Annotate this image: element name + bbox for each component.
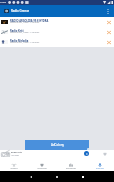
staticText: Stations bbox=[10, 167, 18, 170]
staticText: Greek Music, News - 128 kbps bbox=[10, 41, 40, 44]
button[interactable]: Play bbox=[84, 151, 89, 156]
staticText: Radio Kriti bbox=[10, 29, 24, 33]
button[interactable]: Radio Kriti bbox=[0, 150, 114, 157]
staticText: Greek Music, News - 128 kbps bbox=[10, 31, 40, 34]
button[interactable]: Recordings bbox=[56, 157, 85, 171]
staticText: Favourites bbox=[37, 167, 47, 170]
staticText: RADIO ARGOLIDA 99.8 HYDRA bbox=[10, 19, 49, 23]
staticText: Podcasts bbox=[96, 167, 104, 170]
staticText: Radio Kriti bbox=[11, 151, 22, 154]
button[interactable]: Favourites bbox=[28, 157, 56, 171]
button[interactable]: Home bbox=[44, 171, 70, 182]
button[interactable]: More options bbox=[103, 6, 113, 16]
staticText: 17:13 bbox=[0, 1, 6, 4]
button[interactable]: Radio Kriti bbox=[0, 27, 114, 37]
button[interactable]: AdColony bbox=[25, 140, 89, 150]
button[interactable]: Favourite bbox=[102, 151, 108, 157]
staticText: AdColony bbox=[51, 143, 64, 147]
button[interactable]: RADIO ARGOLIDA 99.8 HYDRA bbox=[0, 17, 114, 27]
button[interactable]: Recent apps bbox=[70, 171, 96, 182]
button[interactable]: Remove station bbox=[104, 28, 113, 37]
staticText: Radio Melodia bbox=[10, 39, 29, 43]
button[interactable]: Radio Greece logo bbox=[4, 9, 9, 13]
button[interactable]: Radio Melodia bbox=[0, 37, 114, 47]
staticText: Greek Music, News - 128 kbps bbox=[10, 21, 40, 24]
button[interactable]: Remove station bbox=[104, 18, 113, 27]
staticText: 128 kbps bbox=[11, 154, 19, 157]
button[interactable]: Podcasts bbox=[85, 157, 114, 171]
button[interactable]: Remove station bbox=[104, 38, 113, 47]
button[interactable]: Back bbox=[18, 171, 44, 182]
staticText: Radio Greece bbox=[11, 9, 30, 13]
button[interactable]: Stations bbox=[0, 157, 28, 171]
staticText: Recordings bbox=[66, 167, 76, 170]
